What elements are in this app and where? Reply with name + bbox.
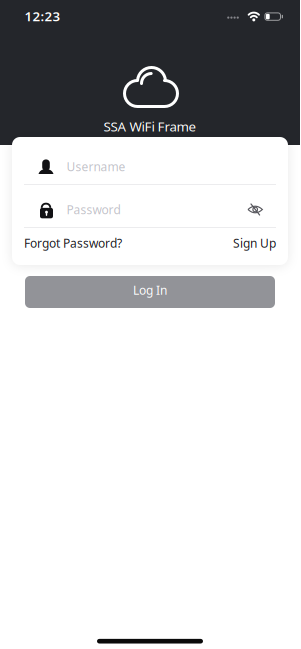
staticText: Sign Up [233,235,276,251]
staticText: Password [66,201,120,217]
staticText: 12:23 [24,7,60,25]
staticText: Username [66,158,125,174]
button[interactable]: Sign Up [233,235,276,251]
staticText: Forgot Password? [24,235,122,251]
button[interactable]: Forgot Password? [24,235,122,251]
button[interactable]: Log In [25,276,275,308]
button[interactable]: Show password [247,204,276,215]
staticText: SSA WiFi Frame [103,117,196,135]
staticText: Log In [133,282,167,298]
